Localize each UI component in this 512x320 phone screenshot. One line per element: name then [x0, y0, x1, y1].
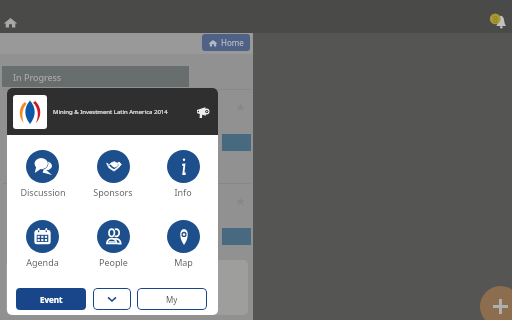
button[interactable]: Add	[480, 286, 512, 320]
button[interactable]: My	[137, 288, 207, 310]
button[interactable]: Discussion	[7, 150, 78, 198]
button[interactable]: Sponsors	[78, 150, 148, 198]
button[interactable]: People	[78, 220, 148, 268]
button[interactable]: Agenda	[7, 220, 78, 268]
button[interactable]: Map	[148, 220, 218, 268]
staticText: 8	[493, 14, 498, 25]
staticText: My	[166, 294, 178, 305]
staticText: Map	[174, 256, 193, 268]
button[interactable]: Announcements	[195, 103, 212, 120]
staticText: People	[99, 256, 128, 268]
staticText: Mining & Investment Latin America 2014	[53, 108, 168, 116]
staticText: Sponsors	[93, 186, 133, 198]
staticText: Info	[174, 186, 192, 198]
button[interactable]: Home	[202, 34, 250, 51]
staticText: In Progress	[13, 71, 62, 83]
staticText: Agenda	[26, 256, 59, 268]
button[interactable]: Home	[3, 15, 18, 30]
button[interactable]: Notifications	[488, 11, 506, 29]
button[interactable]: Info	[148, 150, 218, 198]
button[interactable]: Event	[16, 288, 86, 310]
button[interactable]: More options	[93, 288, 131, 310]
staticText: Event	[40, 294, 63, 305]
staticText: Discussion	[20, 186, 66, 198]
staticText: Home	[221, 37, 244, 48]
